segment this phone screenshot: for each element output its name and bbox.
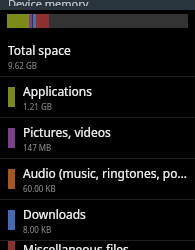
staticText: Miscellaneous files — [23, 241, 129, 250]
button[interactable]: Downloads — [0, 200, 195, 240]
staticText: 147 MB — [23, 142, 52, 153]
staticText: 60.00 KB — [23, 183, 56, 194]
staticText: Applications — [23, 83, 92, 99]
staticText: Total space — [8, 42, 71, 58]
staticText: 8.00 KB — [23, 224, 52, 235]
button[interactable]: Miscellaneous files — [0, 241, 195, 250]
staticText: Downloads — [23, 206, 86, 222]
button[interactable]: Applications — [0, 77, 195, 117]
staticText: 1.21 GB — [23, 101, 52, 112]
button[interactable]: Audio (music, ringtones, podca.. — [0, 159, 195, 199]
staticText: Device memory — [8, 0, 89, 6]
staticText: 9.62 GB — [8, 60, 37, 71]
staticText: Pictures, videos — [23, 124, 111, 140]
button[interactable]: Pictures, videos — [0, 118, 195, 158]
button[interactable]: Total space — [0, 36, 195, 76]
staticText: Audio (music, ringtones, podca.. — [23, 165, 187, 181]
